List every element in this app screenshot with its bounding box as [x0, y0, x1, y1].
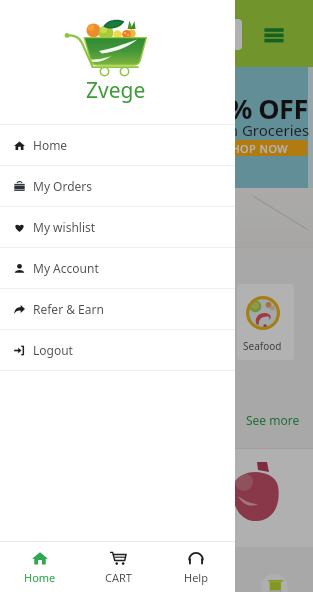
- staticText: On Groceries: [217, 120, 310, 140]
- button[interactable]: Home: [0, 550, 79, 585]
- button[interactable]: Seafood: [237, 284, 294, 360]
- button[interactable]: Home: [0, 125, 235, 165]
- button[interactable]: Refer & Earn: [0, 289, 235, 329]
- staticText: See more: [246, 412, 300, 428]
- button[interactable]: Open navigation menu: [262, 22, 286, 46]
- staticText: My Orders: [33, 178, 93, 194]
- button[interactable]: My Account: [0, 248, 235, 288]
- staticText: My wishlist: [33, 219, 96, 235]
- staticText: CART: [105, 570, 132, 585]
- button[interactable]: See more: [246, 412, 300, 428]
- button[interactable]: Grocery: [12, 284, 69, 360]
- staticText: Seafood: [243, 339, 282, 353]
- button[interactable]: Cart: [261, 574, 288, 592]
- staticText: 50% OFF: [198, 90, 308, 127]
- staticText: Help: [184, 570, 208, 585]
- staticText: My Account: [33, 260, 99, 276]
- staticText: Logout: [33, 342, 73, 358]
- staticText: Grocery: [19, 339, 56, 353]
- button[interactable]: Search: [10, 19, 242, 50]
- button[interactable]: CART: [79, 550, 157, 585]
- button[interactable]: SHOP NOW: [207, 140, 307, 156]
- button[interactable]: Grocery: [87, 284, 144, 360]
- button[interactable]: Logout: [0, 330, 235, 370]
- staticText: Home: [33, 137, 68, 153]
- button[interactable]: Help: [157, 550, 235, 585]
- staticText: Zvege: [86, 76, 146, 105]
- staticText: Home: [24, 570, 56, 585]
- staticText: Refer & Earn: [33, 301, 104, 317]
- button[interactable]: My Orders: [0, 166, 235, 206]
- staticText: SHOP NOW: [225, 141, 289, 156]
- button[interactable]: My wishlist: [0, 207, 235, 247]
